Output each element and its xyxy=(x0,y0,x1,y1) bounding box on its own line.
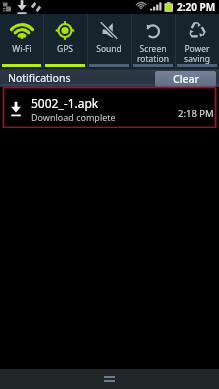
button[interactable]: 5002_-1.apk xyxy=(0,87,219,128)
button[interactable]: Power saving xyxy=(175,14,219,68)
button[interactable]: Clear xyxy=(155,71,216,87)
button[interactable]: Screen rotation xyxy=(131,14,175,68)
staticText: Clear xyxy=(173,72,199,86)
button[interactable]: GPS xyxy=(43,14,87,68)
staticText: Sound xyxy=(96,43,122,55)
staticText: 5002_-1.apk xyxy=(31,95,99,111)
button[interactable]: Sound xyxy=(87,14,131,68)
staticText: Screen rotation xyxy=(137,43,169,64)
button[interactable]: Close panel xyxy=(98,370,121,388)
button[interactable]: Wi-Fi xyxy=(0,14,43,68)
staticText: 2:18 PM xyxy=(178,107,214,120)
staticText: GPS xyxy=(57,43,73,55)
staticText: Notifications xyxy=(8,71,71,85)
staticText: 2:20 PM xyxy=(177,0,216,14)
staticText: Power saving xyxy=(184,43,210,64)
staticText: Wi-Fi xyxy=(12,43,32,55)
staticText: Download complete xyxy=(31,111,116,123)
